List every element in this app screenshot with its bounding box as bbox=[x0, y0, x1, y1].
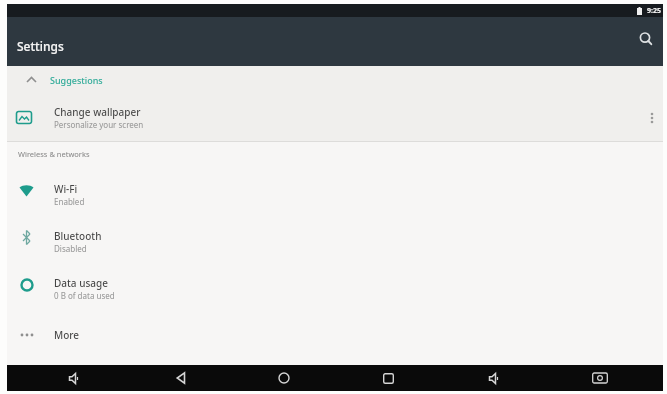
button[interactable]: Suggestions bbox=[7, 66, 663, 94]
staticText: Settings bbox=[17, 38, 64, 54]
staticText: Wireless & networks bbox=[18, 149, 90, 159]
staticText: Enabled bbox=[54, 196, 85, 207]
button[interactable]: Data usage bbox=[7, 265, 663, 312]
button[interactable] bbox=[589, 367, 611, 389]
staticText: Change wallpaper bbox=[54, 105, 141, 119]
button[interactable] bbox=[650, 112, 654, 124]
staticText: Suggestions bbox=[50, 74, 103, 86]
button[interactable] bbox=[637, 30, 655, 48]
button[interactable]: Bluetooth bbox=[7, 217, 663, 265]
button[interactable]: Change wallpaper bbox=[7, 94, 663, 141]
button[interactable]: Wi-Fi bbox=[7, 171, 663, 217]
staticText: 0 B of data used bbox=[54, 290, 115, 301]
staticText: Data usage bbox=[54, 276, 108, 290]
button[interactable] bbox=[170, 367, 192, 389]
button[interactable] bbox=[63, 367, 85, 389]
staticText: Disabled bbox=[54, 243, 87, 254]
staticText: More bbox=[54, 328, 80, 342]
staticText: Bluetooth bbox=[54, 229, 102, 243]
button[interactable]: More bbox=[7, 312, 663, 358]
staticText: 9:25 bbox=[647, 6, 661, 16]
button[interactable] bbox=[483, 367, 505, 389]
staticText: Wi-Fi bbox=[54, 182, 78, 196]
button[interactable] bbox=[273, 367, 295, 389]
button[interactable] bbox=[377, 367, 399, 389]
staticText: Personalize your screen bbox=[54, 119, 144, 130]
